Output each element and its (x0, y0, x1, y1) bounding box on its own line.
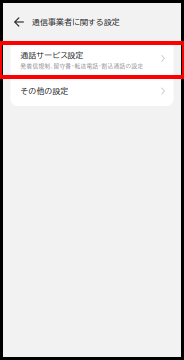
button[interactable]: Back (8, 11, 30, 33)
staticText: 発着信規制、留守番・転送電話・割込通話の設定 (20, 63, 143, 69)
staticText: 通話サービス設定 (20, 51, 83, 59)
button[interactable]: その他の設定 (10, 76, 173, 106)
staticText: その他の設定 (20, 87, 68, 95)
button[interactable]: 通話サービス設定 (10, 41, 173, 76)
staticText: 通信事業者に関する設定 (32, 18, 120, 26)
